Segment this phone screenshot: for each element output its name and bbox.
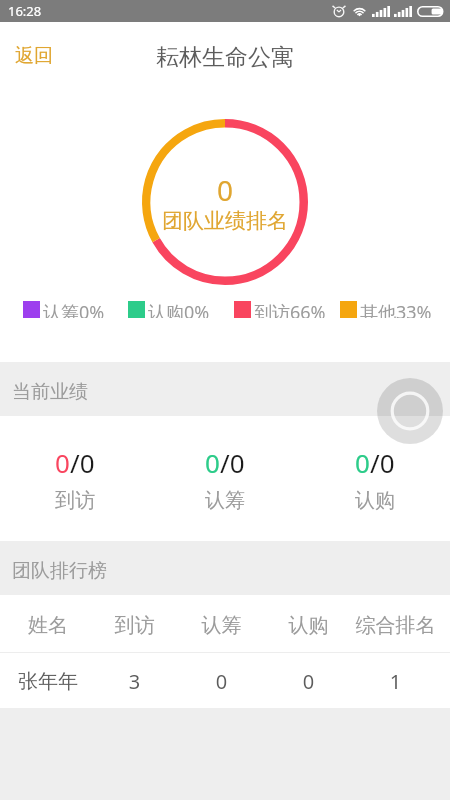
button[interactable]: Assistive touch <box>377 378 443 444</box>
staticText: 当前业绩 <box>12 380 88 404</box>
staticText: 3 <box>91 668 178 695</box>
staticText: /0 <box>220 445 245 480</box>
staticText: 0 <box>205 445 220 480</box>
staticText: 其他33% <box>360 300 432 318</box>
staticText: 认筹 <box>205 488 245 513</box>
staticText: 姓名 <box>5 613 91 638</box>
staticText: 认购 <box>265 613 352 638</box>
staticText: 认筹0% <box>43 300 105 318</box>
button[interactable]: 返回 <box>0 32 68 80</box>
staticText: 到访 <box>91 613 178 638</box>
staticText: 返回 <box>15 44 53 68</box>
staticText: 耘林生命公寓 <box>156 43 294 72</box>
staticText: 张年年 <box>5 669 91 694</box>
staticText: /0 <box>70 445 95 480</box>
staticText: 综合排名 <box>352 613 439 638</box>
button[interactable]: 张年年 <box>0 653 450 708</box>
staticText: 0 <box>217 171 234 209</box>
staticText: 16:28 <box>8 2 42 20</box>
staticText: 0 <box>355 445 370 480</box>
staticText: 到访 <box>55 488 95 513</box>
staticText: 1 <box>352 668 439 695</box>
staticText: 认购 <box>355 488 395 513</box>
staticText: 认购0% <box>148 300 210 318</box>
staticText: 认筹 <box>178 613 265 638</box>
staticText: 0 <box>265 668 352 695</box>
staticText: 团队业绩排名 <box>162 208 288 234</box>
staticText: 0 <box>178 668 265 695</box>
staticText: 0 <box>55 445 70 480</box>
staticText: 团队排行榜 <box>12 559 107 583</box>
staticText: 到访66% <box>254 300 326 318</box>
staticText: /0 <box>370 445 395 480</box>
